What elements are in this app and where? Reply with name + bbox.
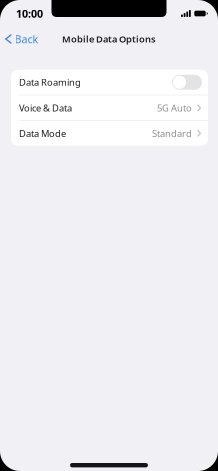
staticText: Data Mode [19, 127, 66, 139]
staticText: Mobile Data Options [62, 33, 156, 45]
staticText: 5G Auto [157, 102, 192, 114]
staticText: Voice & Data [19, 102, 72, 114]
button[interactable]: Data Mode [11, 121, 208, 146]
staticText: Standard [152, 127, 192, 139]
button[interactable]: Data Roaming [11, 70, 208, 95]
staticText: 10:00 [16, 6, 43, 21]
staticText: Data Roaming [19, 76, 81, 88]
staticText: Back [14, 32, 38, 46]
button[interactable]: Voice & Data [11, 95, 208, 120]
button[interactable]: Back [0, 27, 46, 51]
